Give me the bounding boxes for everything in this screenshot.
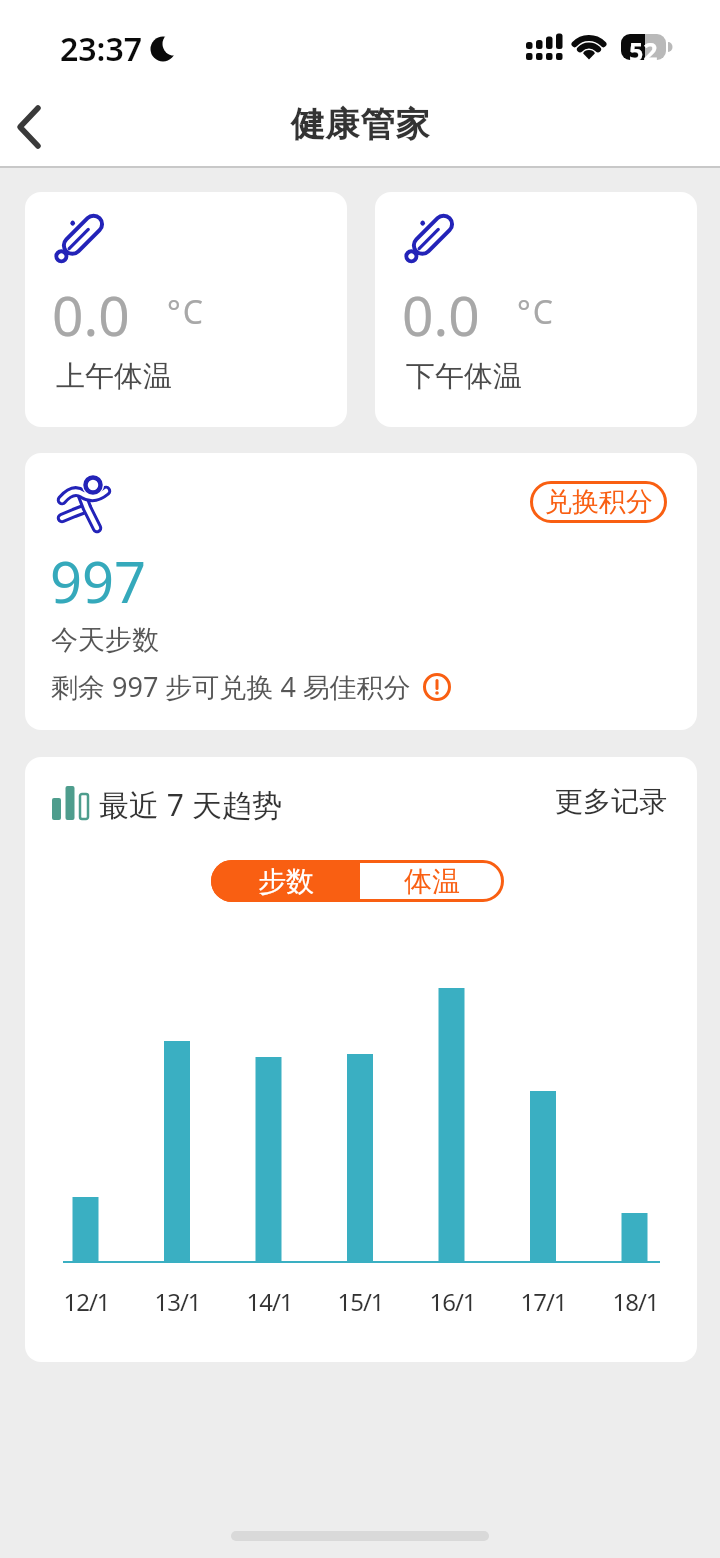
staticText: 0.0 <box>402 277 480 352</box>
staticText: 16/1 <box>429 1285 476 1318</box>
staticText: 18/1 <box>612 1285 659 1318</box>
button[interactable]: 0.0 <box>375 192 697 427</box>
staticText: 今天步数 <box>51 623 159 657</box>
staticText: 兑换积分 <box>545 485 653 519</box>
staticText: 步数 <box>258 864 314 899</box>
button[interactable]: 兑换积分 <box>530 481 667 523</box>
staticText: 15/1 <box>337 1285 384 1318</box>
staticText: 52 <box>629 34 658 60</box>
staticText: °C <box>517 290 555 334</box>
staticText: 13/1 <box>154 1285 201 1318</box>
button[interactable]: 步数 <box>211 860 360 902</box>
staticText: 12/1 <box>63 1285 110 1318</box>
button[interactable] <box>14 105 44 149</box>
staticText: 997 <box>50 543 147 619</box>
staticText: 下午体温 <box>406 358 522 395</box>
button[interactable]: 0.0 <box>25 192 347 427</box>
staticText: 23:37 <box>60 27 143 71</box>
staticText: 最近 7 天趋势 <box>99 784 282 825</box>
staticText: 健康管家 <box>290 103 430 146</box>
staticText: 0.0 <box>52 277 130 352</box>
staticText: 上午体温 <box>56 358 172 395</box>
button[interactable]: 更多记录 <box>555 784 667 819</box>
button[interactable]: 体温 <box>360 860 504 902</box>
staticText: 体温 <box>404 864 460 899</box>
staticText: °C <box>167 290 205 334</box>
staticText: 14/1 <box>246 1285 293 1318</box>
staticText: 17/1 <box>520 1285 567 1318</box>
staticText: 剩余 997 步可兑换 4 易佳积分 <box>51 668 411 705</box>
